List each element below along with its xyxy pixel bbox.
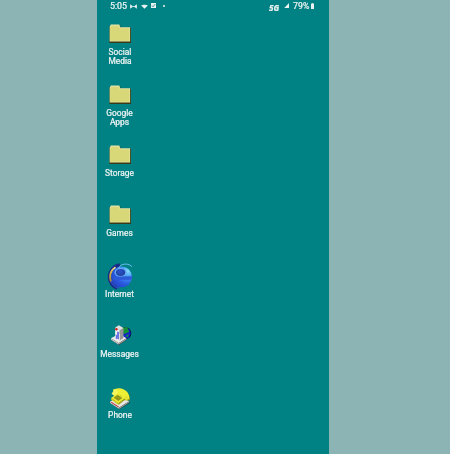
button[interactable]: Google Apps [97,82,142,142]
button[interactable]: Social Media [97,21,142,81]
staticText: Games [106,228,133,238]
staticText: 5:05 [110,1,127,11]
staticText: Storage [105,168,134,178]
button[interactable]: Storage [97,142,142,202]
staticText: Google Apps [106,108,133,127]
staticText: Internet [105,289,134,299]
staticText: 5G [269,2,280,13]
staticText: Social Media [108,47,132,66]
staticText: Messages [100,349,139,359]
button[interactable]: Messages [97,323,142,383]
button[interactable]: Phone [97,384,142,444]
staticText: Phone [108,410,132,420]
button[interactable]: Games [97,202,142,262]
staticText: 79% [293,1,310,11]
button[interactable]: Internet [97,263,142,323]
